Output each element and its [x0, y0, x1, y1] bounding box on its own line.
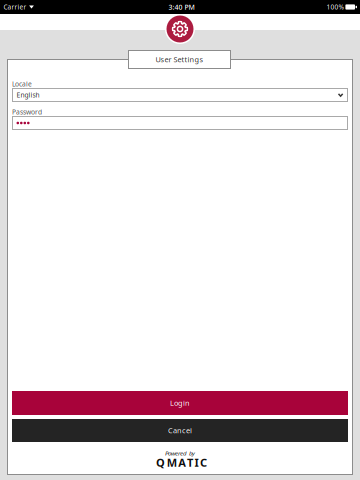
staticText: Login — [170, 398, 190, 408]
button[interactable]: Cancel — [12, 419, 348, 442]
button[interactable]: Settings — [165, 14, 195, 44]
staticText: 3:40 PM — [168, 2, 194, 12]
staticText: Powered by — [165, 449, 195, 457]
staticText: Locale — [12, 79, 32, 89]
staticText: 100% — [326, 3, 343, 11]
staticText: Password — [12, 107, 42, 117]
staticText: Carrier — [3, 3, 26, 11]
button[interactable]: Login — [12, 391, 348, 415]
staticText: Cancel — [168, 425, 192, 435]
staticText: QMATIC — [156, 455, 207, 470]
staticText: English — [16, 90, 39, 100]
staticText: User Settings — [155, 54, 203, 64]
button[interactable]: User Settings — [128, 50, 231, 69]
